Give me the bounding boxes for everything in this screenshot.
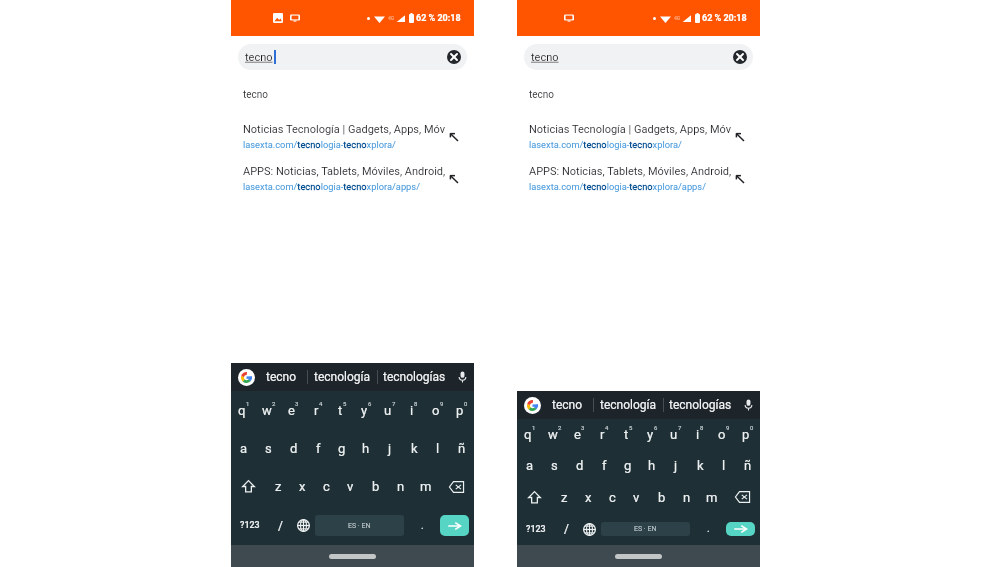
button[interactable]: b bbox=[649, 481, 674, 513]
button[interactable]: i bbox=[688, 419, 712, 450]
button[interactable]: f bbox=[592, 450, 616, 481]
button[interactable]: Insert suggestion bbox=[445, 128, 463, 146]
button[interactable]: Voice search bbox=[450, 363, 474, 391]
button[interactable]: f bbox=[306, 429, 330, 467]
button[interactable]: i bbox=[402, 391, 426, 429]
button[interactable]: q bbox=[517, 419, 542, 450]
button[interactable]: z bbox=[266, 467, 290, 506]
button[interactable]: a bbox=[231, 429, 256, 467]
staticText: x bbox=[299, 479, 306, 494]
button[interactable]: v bbox=[624, 481, 649, 513]
button[interactable]: Search bbox=[440, 515, 469, 536]
staticText: v bbox=[347, 479, 354, 494]
button[interactable]: g bbox=[616, 450, 640, 481]
button[interactable]: x bbox=[576, 481, 600, 513]
staticText: 62 % 20:18 bbox=[416, 13, 461, 24]
button[interactable]: e bbox=[567, 419, 592, 450]
button[interactable]: h bbox=[640, 450, 664, 481]
button[interactable]: ñ bbox=[736, 450, 760, 481]
button[interactable]: Insert suggestion bbox=[731, 170, 749, 188]
button[interactable]: Clear search bbox=[447, 50, 461, 64]
button[interactable]: tecno bbox=[255, 363, 307, 391]
staticText: 6 bbox=[654, 424, 658, 431]
button[interactable]: s bbox=[542, 450, 567, 481]
button[interactable]: o bbox=[712, 419, 736, 450]
button[interactable]: Shift bbox=[231, 467, 266, 506]
button[interactable]: n bbox=[388, 467, 413, 506]
button[interactable]: b bbox=[363, 467, 388, 506]
button[interactable]: j bbox=[378, 429, 402, 467]
button[interactable]: t bbox=[330, 391, 354, 429]
button[interactable]: tecno bbox=[524, 44, 753, 70]
button[interactable]: Backspace bbox=[724, 481, 760, 513]
button[interactable]: tecno bbox=[541, 391, 593, 419]
button[interactable]: k bbox=[688, 450, 712, 481]
button[interactable]: Insert suggestion bbox=[445, 170, 463, 188]
button[interactable]: h bbox=[354, 429, 378, 467]
button[interactable]: ñ bbox=[450, 429, 474, 467]
button[interactable]: APPS: Noticias, Tablets, Móviles, Androi… bbox=[517, 165, 760, 192]
button[interactable]: q bbox=[231, 391, 256, 429]
button[interactable]: g bbox=[330, 429, 354, 467]
button[interactable]: / bbox=[269, 506, 291, 545]
button[interactable]: . bbox=[690, 513, 726, 545]
button[interactable]: v bbox=[338, 467, 363, 506]
button[interactable]: l bbox=[426, 429, 450, 467]
button[interactable]: Search bbox=[726, 522, 755, 536]
button[interactable]: p bbox=[450, 391, 474, 429]
button[interactable]: Backspace bbox=[438, 467, 474, 506]
button[interactable]: e bbox=[281, 391, 306, 429]
button[interactable]: y bbox=[354, 391, 378, 429]
staticText: v bbox=[633, 490, 640, 505]
staticText: q bbox=[524, 427, 532, 442]
button[interactable]: APPS: Noticias, Tablets, Móviles, Androi… bbox=[231, 165, 474, 192]
button[interactable]: s bbox=[256, 429, 281, 467]
button[interactable]: Google bbox=[238, 369, 255, 386]
button[interactable]: j bbox=[664, 450, 688, 481]
button[interactable]: Noticias Tecnología | Gadgets, Apps, Móv bbox=[517, 123, 760, 150]
button[interactable]: w bbox=[542, 419, 567, 450]
button[interactable]: tecnologías bbox=[378, 363, 450, 391]
button[interactable]: tecnologías bbox=[664, 391, 736, 419]
button[interactable]: r bbox=[306, 391, 330, 429]
button[interactable]: w bbox=[256, 391, 281, 429]
button[interactable]: u bbox=[664, 419, 688, 450]
button[interactable]: ES · EN bbox=[601, 522, 690, 536]
button[interactable]: Change language bbox=[291, 506, 315, 545]
button[interactable]: / bbox=[555, 513, 577, 545]
button[interactable]: Change language bbox=[577, 513, 601, 545]
button[interactable]: tecno bbox=[238, 44, 467, 70]
button[interactable]: m bbox=[413, 467, 438, 506]
button[interactable]: z bbox=[552, 481, 576, 513]
button[interactable]: tecnología bbox=[308, 363, 377, 391]
button[interactable]: Voice search bbox=[736, 391, 760, 419]
button[interactable]: r bbox=[592, 419, 616, 450]
button[interactable]: d bbox=[567, 450, 592, 481]
button[interactable]: n bbox=[674, 481, 699, 513]
button[interactable]: tecnología bbox=[594, 391, 663, 419]
button[interactable]: o bbox=[426, 391, 450, 429]
button[interactable]: t bbox=[616, 419, 640, 450]
button[interactable]: a bbox=[517, 450, 542, 481]
button[interactable]: ?123 bbox=[231, 506, 269, 545]
button[interactable]: ES · EN bbox=[315, 515, 404, 536]
button[interactable]: x bbox=[290, 467, 314, 506]
button[interactable]: k bbox=[402, 429, 426, 467]
button[interactable]: Google bbox=[524, 397, 541, 414]
button[interactable]: c bbox=[314, 467, 338, 506]
button[interactable]: m bbox=[699, 481, 724, 513]
button[interactable]: u bbox=[378, 391, 402, 429]
button[interactable]: . bbox=[404, 506, 440, 545]
button[interactable]: l bbox=[712, 450, 736, 481]
button[interactable]: y bbox=[640, 419, 664, 450]
button[interactable]: Shift bbox=[517, 481, 552, 513]
button[interactable]: ?123 bbox=[517, 513, 555, 545]
button[interactable]: p bbox=[736, 419, 760, 450]
button[interactable]: d bbox=[281, 429, 306, 467]
button[interactable]: c bbox=[600, 481, 624, 513]
staticText: . bbox=[421, 520, 424, 532]
button[interactable]: Noticias Tecnología | Gadgets, Apps, Móv bbox=[231, 123, 474, 150]
staticText: h bbox=[648, 458, 656, 473]
button[interactable]: Insert suggestion bbox=[731, 128, 749, 146]
button[interactable]: Clear search bbox=[733, 50, 747, 64]
